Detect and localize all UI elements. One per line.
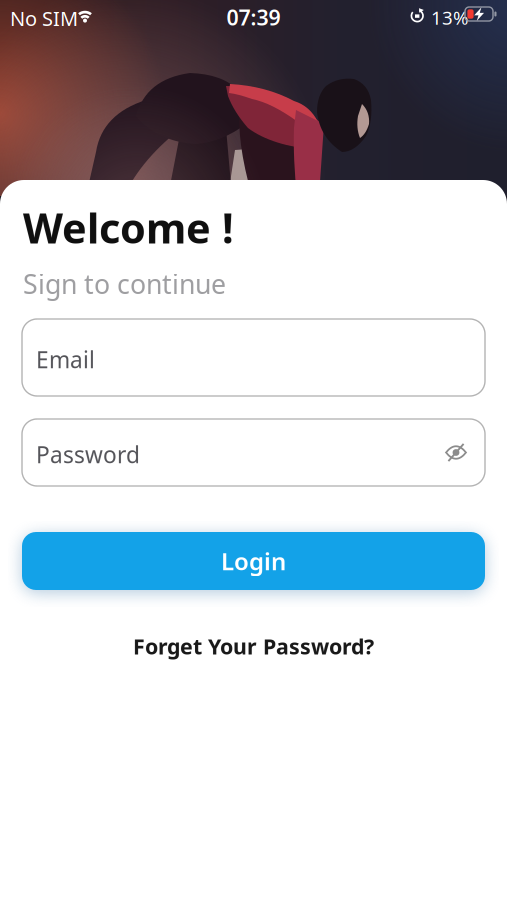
staticText: 07:39	[226, 3, 280, 31]
staticText: Email	[36, 344, 95, 374]
staticText: 13%	[431, 5, 469, 30]
staticText: No SIM	[10, 5, 78, 32]
button[interactable]: Password	[22, 419, 485, 486]
button[interactable]: Show password	[445, 443, 467, 461]
staticText: Login	[221, 545, 286, 577]
staticText: Sign to continue	[23, 266, 226, 301]
button[interactable]: Login	[22, 532, 485, 590]
staticText: Password	[36, 439, 140, 469]
staticText: Forget Your Password?	[133, 632, 374, 660]
staticText: Welcome !	[23, 200, 234, 255]
button[interactable]: Email	[22, 319, 485, 396]
button[interactable]: Forget Your Password?	[22, 632, 485, 660]
